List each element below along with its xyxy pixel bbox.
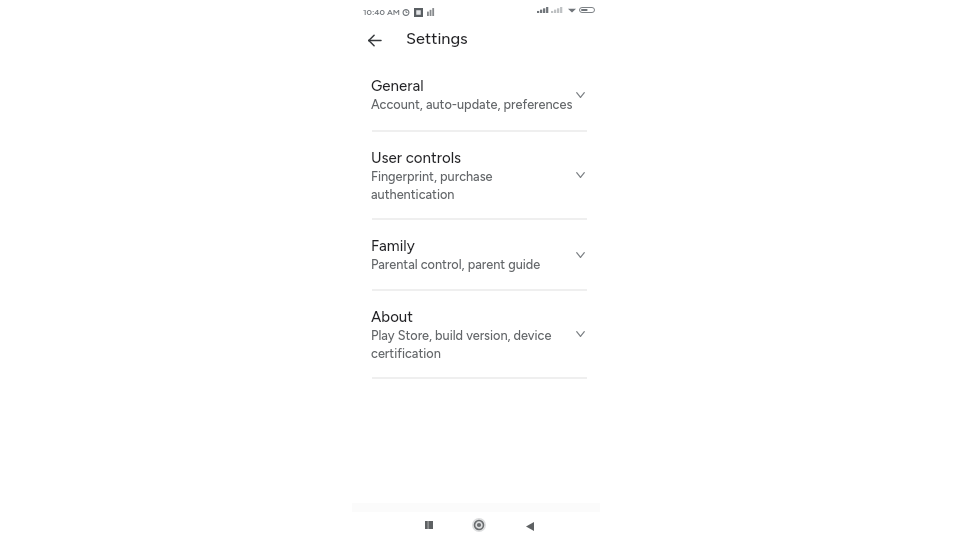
button[interactable]: Recent apps: [424, 520, 434, 530]
button[interactable]: Home: [469, 515, 489, 535]
staticText: General: [371, 77, 424, 95]
staticText: Play Store, build version, device certif…: [371, 328, 577, 361]
button[interactable]: Back: [524, 520, 536, 532]
button[interactable]: About: [352, 290, 600, 378]
staticText: Settings: [406, 29, 468, 49]
button[interactable]: General: [352, 59, 600, 131]
staticText: 10:40 AM: [363, 7, 401, 17]
staticText: About: [371, 308, 414, 326]
staticText: Parental control, parent guide: [371, 257, 541, 272]
button[interactable]: Back: [361, 27, 387, 53]
staticText: Account, auto-update, preferences: [371, 97, 573, 112]
staticText: User controls: [371, 149, 462, 167]
button[interactable]: Family: [352, 219, 600, 290]
staticText: Fingerprint, purchase authentication: [371, 169, 577, 202]
button[interactable]: User controls: [352, 131, 600, 219]
staticText: Family: [371, 237, 415, 255]
